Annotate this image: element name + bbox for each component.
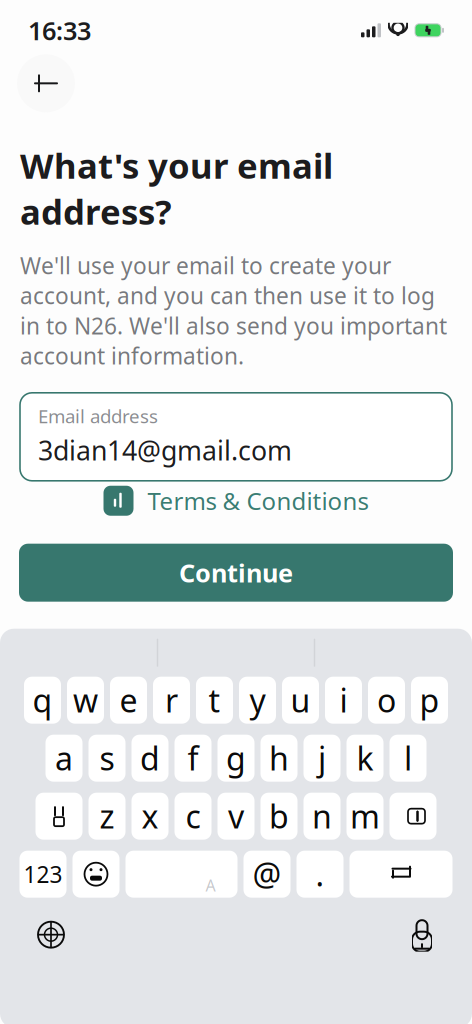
staticText: v: [228, 795, 244, 837]
staticText: @: [252, 853, 281, 895]
staticText: p: [419, 679, 439, 721]
button[interactable]: Return: [349, 851, 452, 898]
button[interactable]: v: [217, 793, 254, 840]
button[interactable]: q: [24, 677, 61, 724]
button[interactable]: b: [260, 793, 297, 840]
button[interactable]: Back: [17, 54, 75, 112]
button[interactable]: n: [303, 793, 340, 840]
button[interactable]: s: [88, 735, 125, 782]
button[interactable]: i: [325, 677, 362, 724]
staticText: i: [339, 679, 347, 721]
staticText: Email address: [38, 404, 158, 428]
button[interactable]: 123: [19, 851, 66, 898]
button[interactable]: w: [67, 677, 104, 724]
staticText: d: [140, 737, 160, 779]
button[interactable]: d: [131, 735, 168, 782]
button[interactable]: j: [303, 735, 340, 782]
button[interactable]: Emoji: [72, 851, 119, 898]
button[interactable]: c: [174, 793, 211, 840]
staticText: f: [187, 737, 198, 779]
staticText: 16:33: [28, 13, 91, 47]
button[interactable]: a: [45, 735, 82, 782]
button[interactable]: Space: [125, 851, 237, 898]
staticText: x: [141, 795, 158, 837]
button[interactable]: m: [346, 793, 383, 840]
button[interactable]: .: [296, 851, 343, 898]
button[interactable]: g: [217, 735, 254, 782]
staticText: 3dian14@gmail.com: [38, 432, 292, 468]
button[interactable]: x: [131, 793, 168, 840]
staticText: m: [350, 795, 380, 837]
staticText: y: [249, 679, 265, 721]
staticText: k: [356, 737, 373, 779]
staticText: q: [32, 679, 52, 721]
staticText: n: [312, 795, 332, 837]
staticText: t: [208, 679, 220, 721]
staticText: w: [73, 679, 98, 721]
button[interactable]: y: [239, 677, 276, 724]
staticText: r: [165, 679, 178, 721]
button[interactable]: e: [110, 677, 147, 724]
button[interactable]: Terms & Conditions: [103, 481, 368, 521]
button[interactable]: f: [174, 735, 211, 782]
staticText: A: [205, 875, 215, 896]
staticText: s: [99, 737, 114, 779]
staticText: We'll use your email to create your acco…: [20, 250, 447, 371]
staticText: Terms & Conditions: [147, 485, 368, 517]
button[interactable]: Delete: [389, 793, 436, 840]
staticText: e: [119, 679, 137, 721]
staticText: Continue: [179, 556, 293, 589]
staticText: z: [99, 795, 114, 837]
button[interactable]: k: [346, 735, 383, 782]
staticText: b: [269, 795, 289, 837]
button[interactable]: z: [88, 793, 125, 840]
staticText: 123: [23, 859, 62, 889]
staticText: a: [55, 737, 73, 779]
button[interactable]: r: [153, 677, 190, 724]
button[interactable]: u: [282, 677, 319, 724]
button[interactable]: Dictate: [406, 918, 438, 952]
staticText: .: [315, 853, 324, 895]
button[interactable]: p: [411, 677, 448, 724]
staticText: l: [404, 737, 412, 779]
button[interactable]: Change keyboard: [34, 918, 68, 952]
staticText: What's your email address?: [20, 142, 333, 234]
staticText: c: [185, 795, 200, 837]
button[interactable]: t: [196, 677, 233, 724]
button[interactable]: l: [389, 735, 426, 782]
button[interactable]: Continue: [19, 544, 453, 602]
staticText: g: [226, 737, 246, 779]
button[interactable]: Email address: [20, 393, 452, 481]
staticText: h: [269, 737, 289, 779]
staticText: o: [377, 679, 396, 721]
button[interactable]: Shift: [35, 793, 82, 840]
button[interactable]: h: [260, 735, 297, 782]
button[interactable]: o: [368, 677, 405, 724]
button[interactable]: @: [243, 851, 290, 898]
staticText: u: [290, 679, 310, 721]
staticText: j: [318, 737, 326, 779]
